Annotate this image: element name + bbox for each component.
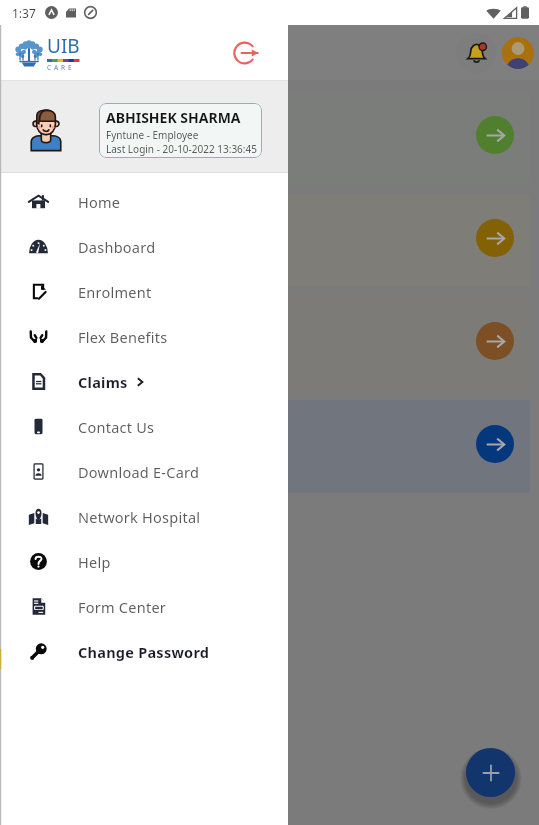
staticText: ABHISHEK SHARMA — [106, 108, 241, 127]
staticText: Download E-Card — [78, 462, 200, 482]
staticText: Home — [78, 192, 121, 212]
button[interactable] — [9, 297, 530, 390]
button[interactable] — [9, 400, 530, 493]
staticText: Fyntune - Employee — [106, 128, 199, 142]
staticText: UIB — [47, 33, 80, 59]
staticText: Last Login - 20-10-2022 13:36:45 — [106, 142, 257, 156]
button[interactable]: Enrolment — [0, 269, 288, 314]
button[interactable]: Profile — [502, 37, 534, 69]
staticText: Flex Benefits — [78, 327, 168, 347]
button[interactable]: Help — [0, 539, 288, 584]
button[interactable]: Home — [0, 179, 288, 224]
button[interactable]: Network Hospital — [0, 494, 288, 539]
button[interactable]: Form Center — [0, 584, 288, 629]
button[interactable] — [9, 194, 530, 287]
staticText: Help — [78, 552, 111, 572]
button[interactable] — [9, 91, 530, 184]
staticText: C A R E — [47, 63, 73, 72]
button[interactable]: Dashboard — [0, 224, 288, 269]
staticText: Dashboard — [78, 237, 156, 257]
staticText: Network Hospital — [78, 507, 201, 527]
button[interactable]: Flex Benefits — [0, 314, 288, 359]
button[interactable]: Download E-Card — [0, 449, 288, 494]
button[interactable]: Notifications — [456, 33, 496, 73]
button[interactable]: Add — [466, 748, 515, 797]
button[interactable]: Contact Us — [0, 404, 288, 449]
staticText: Claims — [78, 372, 128, 392]
staticText: Change Password — [78, 642, 210, 662]
button[interactable]: Claims — [0, 359, 288, 404]
staticText: 1:37 — [12, 5, 36, 21]
button[interactable]: Logout — [228, 35, 264, 71]
button[interactable]: Change Password — [0, 629, 288, 674]
staticText: Enrolment — [78, 282, 152, 302]
staticText: Contact Us — [78, 417, 155, 437]
staticText: Form Center — [78, 597, 167, 617]
